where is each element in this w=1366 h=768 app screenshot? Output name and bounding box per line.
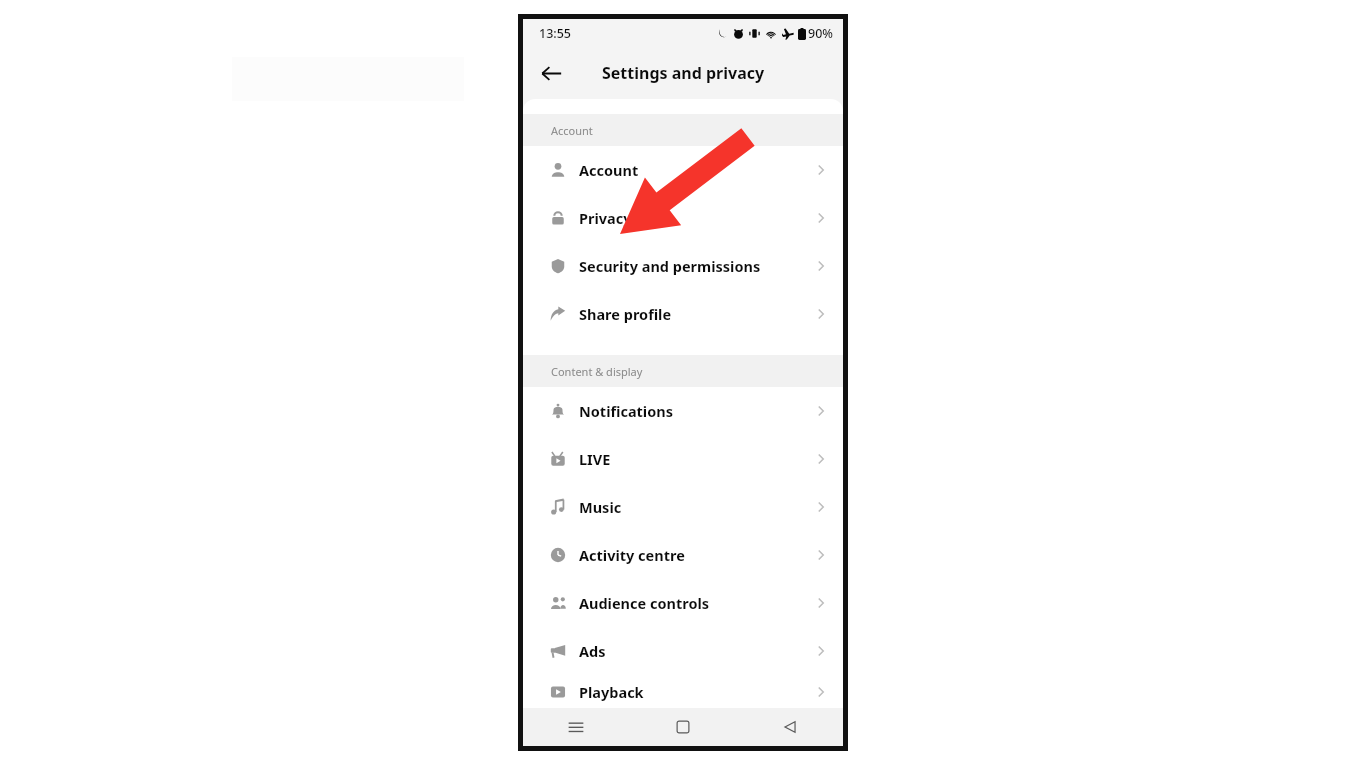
- staticText: Notifications: [579, 401, 817, 421]
- staticText: 90%: [808, 25, 833, 42]
- staticText: Playback: [579, 682, 817, 702]
- button[interactable]: Privacy: [523, 194, 843, 242]
- button[interactable]: Account: [523, 146, 843, 194]
- staticText: Account: [579, 160, 817, 180]
- staticText: LIVE: [579, 449, 817, 469]
- button[interactable]: Activity centre: [523, 531, 843, 579]
- button[interactable]: Share profile: [523, 290, 843, 338]
- button[interactable]: Home: [629, 708, 736, 746]
- button[interactable]: Playback: [523, 675, 843, 708]
- button[interactable]: Back: [736, 708, 843, 746]
- staticText: Account: [551, 123, 593, 138]
- button[interactable]: Back: [533, 55, 569, 91]
- staticText: Privacy: [579, 208, 817, 228]
- button[interactable]: Audience controls: [523, 579, 843, 627]
- staticText: Security and permissions: [579, 256, 817, 276]
- staticText: Ads: [579, 641, 817, 661]
- staticText: Audience controls: [579, 593, 817, 613]
- button[interactable]: Ads: [523, 627, 843, 675]
- button[interactable]: LIVE: [523, 435, 843, 483]
- button[interactable]: Security and permissions: [523, 242, 843, 290]
- staticText: Activity centre: [579, 545, 817, 565]
- staticText: 13:55: [539, 25, 572, 42]
- button[interactable]: Notifications: [523, 387, 843, 435]
- staticText: Content & display: [551, 364, 643, 379]
- button[interactable]: Music: [523, 483, 843, 531]
- staticText: Share profile: [579, 304, 817, 324]
- button[interactable]: Recents: [523, 708, 629, 746]
- staticText: Music: [579, 497, 817, 517]
- staticText: Settings and privacy: [602, 62, 765, 84]
